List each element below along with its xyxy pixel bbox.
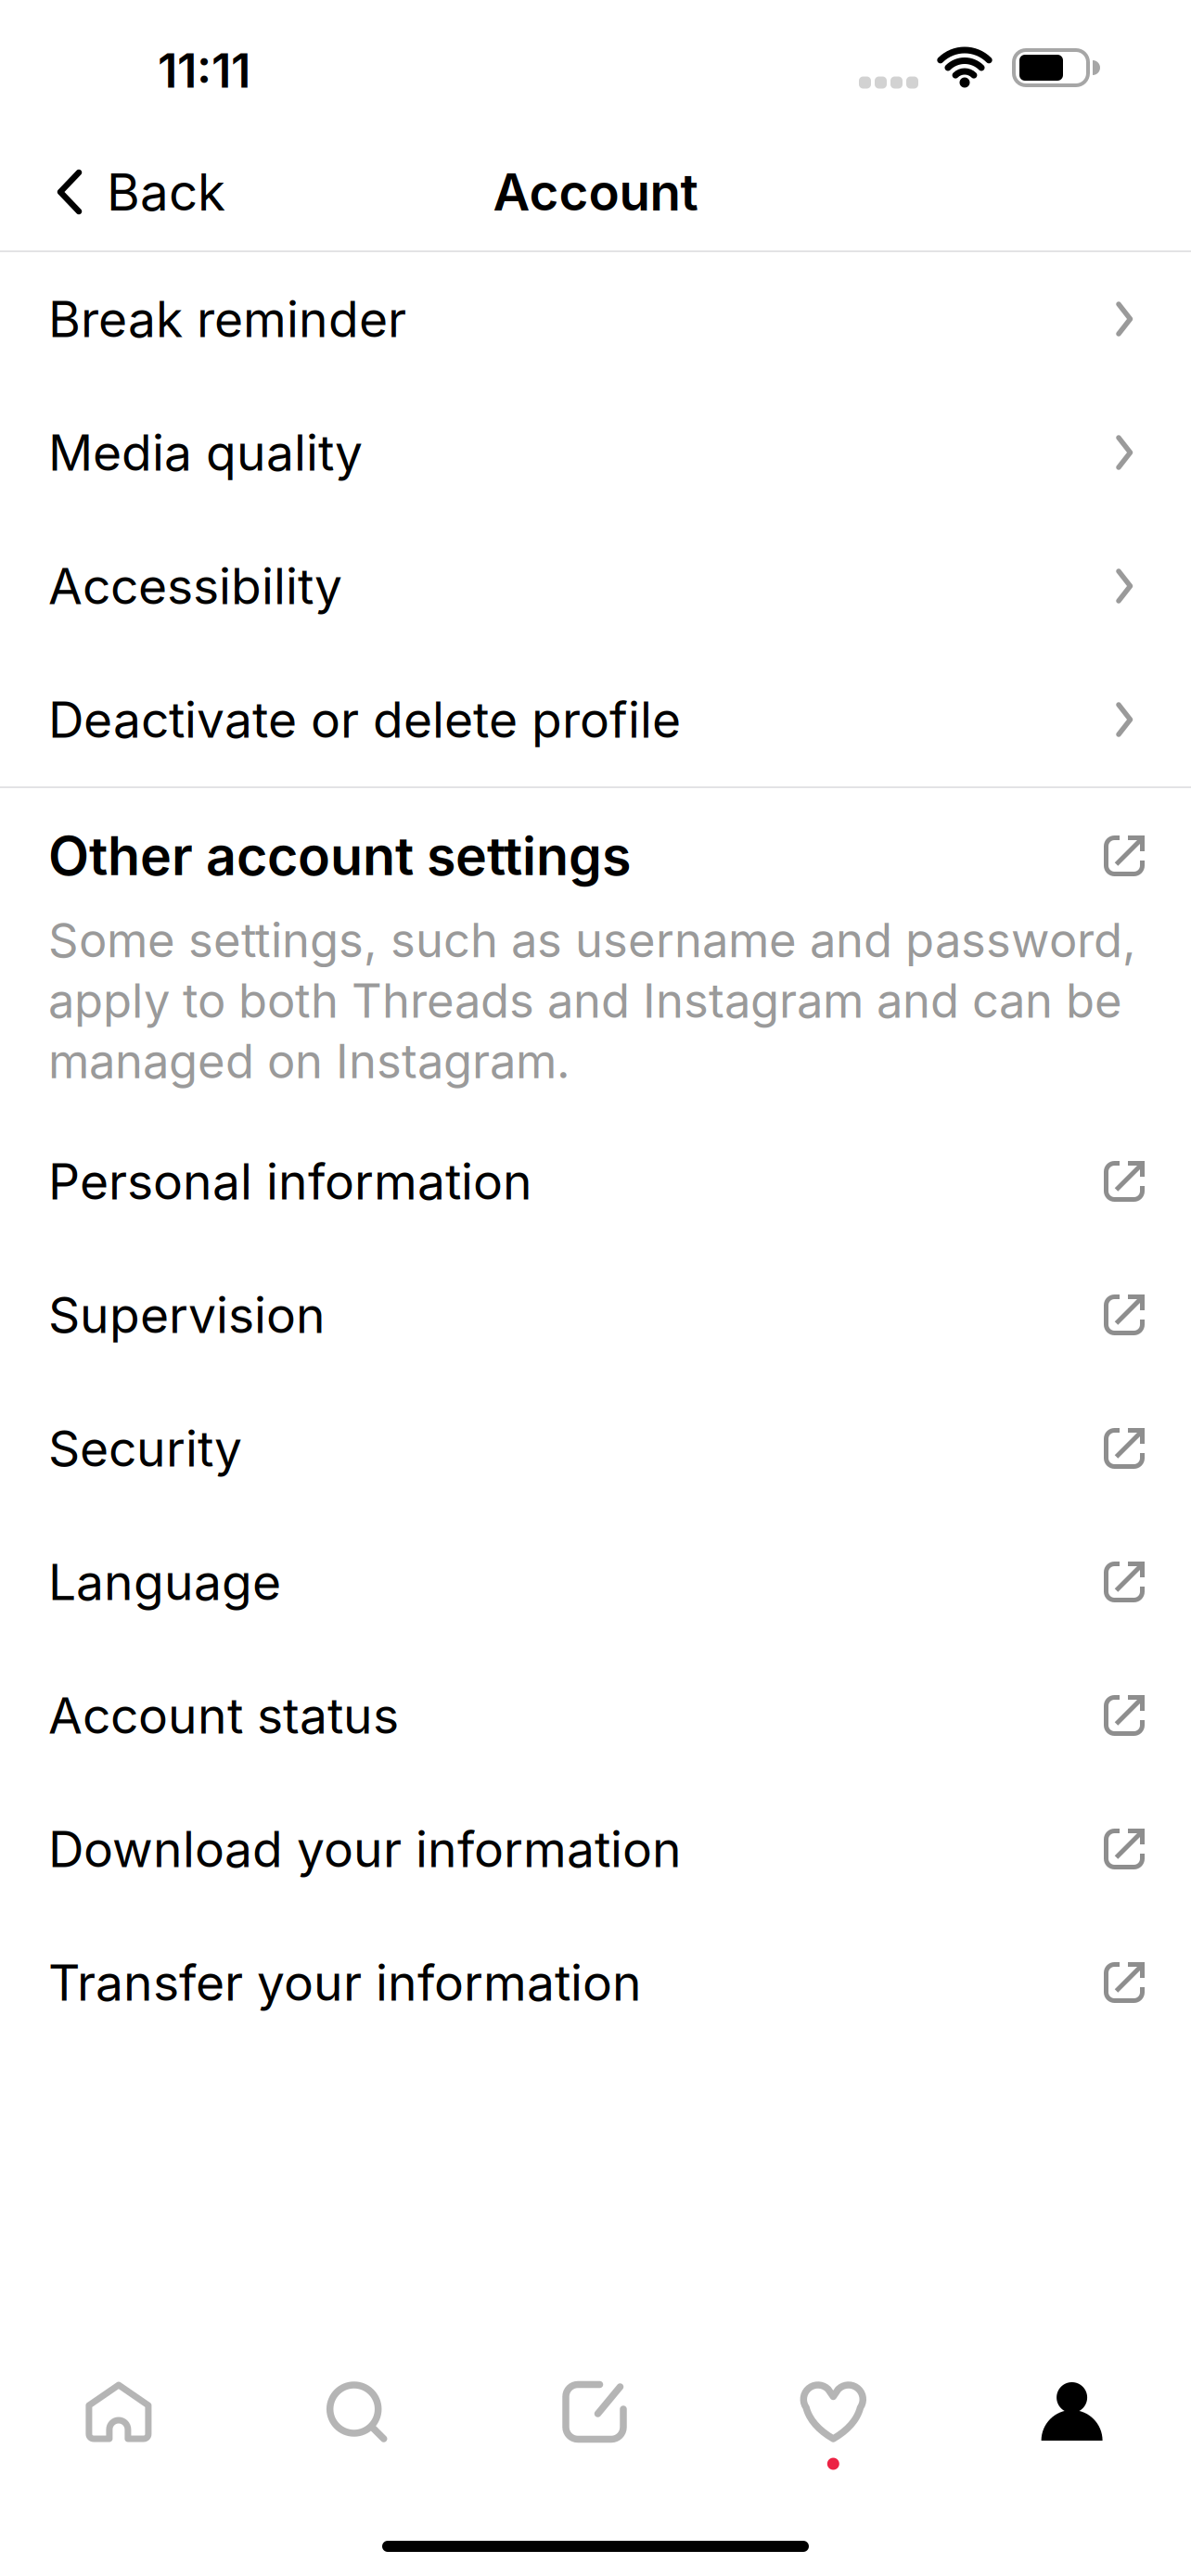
- button[interactable]: Other account settings: [0, 788, 1191, 916]
- button[interactable]: New thread: [476, 2355, 714, 2468]
- button[interactable]: Media quality: [0, 386, 1191, 519]
- staticText: Back: [107, 162, 225, 222]
- staticText: Other account settings: [48, 825, 631, 887]
- button[interactable]: Transfer your information: [0, 1916, 1191, 2049]
- staticText: Transfer your information: [48, 1953, 642, 2012]
- button[interactable]: Personal information: [0, 1115, 1191, 1248]
- button[interactable]: Language: [0, 1515, 1191, 1649]
- button[interactable]: Accessibility: [0, 519, 1191, 653]
- button[interactable]: Search: [238, 2355, 476, 2468]
- staticText: Account status: [48, 1686, 399, 1745]
- staticText: Download your information: [48, 1820, 682, 1878]
- staticText: 11:11: [158, 43, 250, 98]
- button[interactable]: Security: [0, 1382, 1191, 1515]
- button[interactable]: Deactivate or delete profile: [0, 653, 1191, 786]
- button[interactable]: Home: [0, 2355, 238, 2468]
- staticText: Accessibility: [48, 557, 342, 615]
- button[interactable]: Profile: [952, 2355, 1191, 2468]
- staticText: Language: [48, 1553, 281, 1611]
- button[interactable]: Download your information: [0, 1782, 1191, 1916]
- staticText: Personal information: [48, 1152, 532, 1210]
- staticText: Media quality: [48, 423, 363, 482]
- button[interactable]: Activity: [714, 2355, 952, 2468]
- button[interactable]: Account status: [0, 1649, 1191, 1782]
- staticText: Security: [48, 1419, 242, 1478]
- staticText: Break reminder: [48, 290, 406, 348]
- staticText: Deactivate or delete profile: [48, 690, 681, 749]
- staticText: Account: [493, 162, 698, 222]
- button[interactable]: Supervision: [0, 1248, 1191, 1382]
- button[interactable]: Break reminder: [0, 252, 1191, 386]
- staticText: Some settings, such as username and pass…: [48, 912, 1136, 1089]
- button[interactable]: Back: [57, 162, 225, 222]
- staticText: Supervision: [48, 1286, 326, 1344]
